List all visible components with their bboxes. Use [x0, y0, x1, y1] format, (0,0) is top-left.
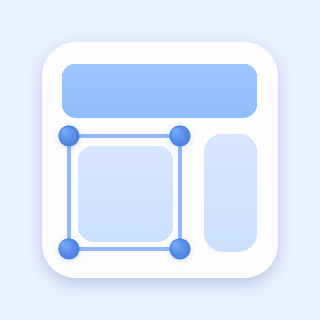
button[interactable]: Layout editor: [0, 0, 320, 320]
